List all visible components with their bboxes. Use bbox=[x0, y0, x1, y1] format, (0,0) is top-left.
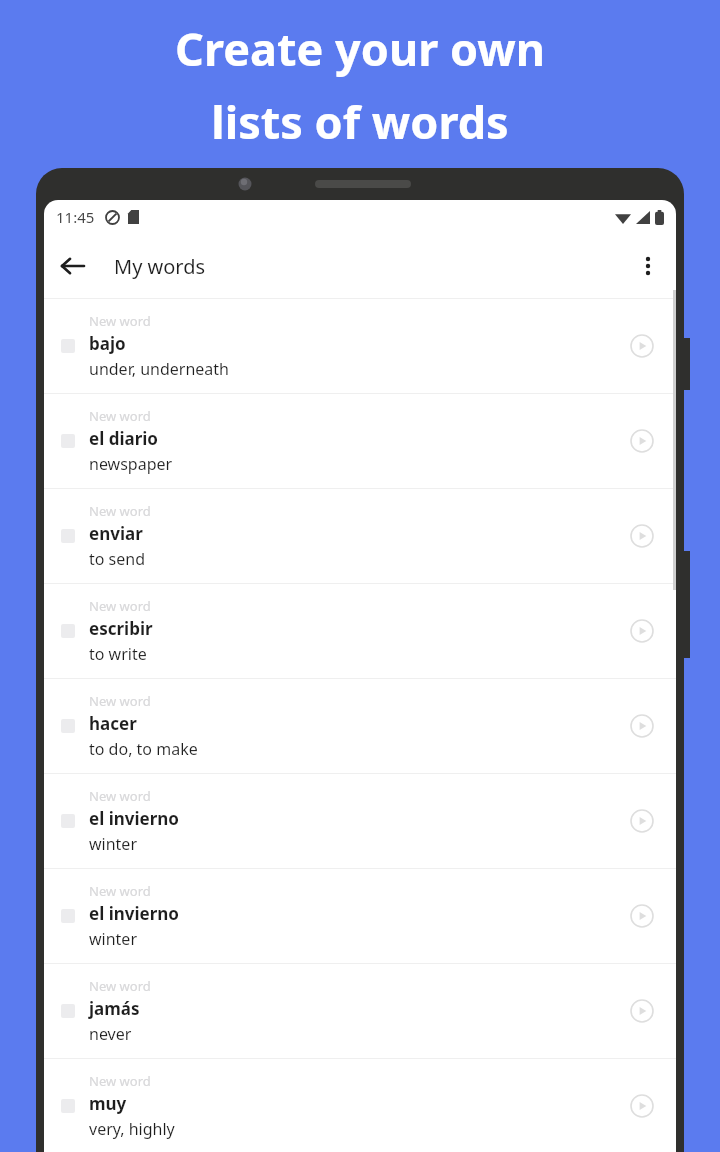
staticText: jamás bbox=[89, 997, 140, 1020]
staticText: under, underneath bbox=[89, 358, 229, 380]
button[interactable]: New word bbox=[44, 584, 676, 679]
button[interactable]: New word bbox=[44, 964, 676, 1059]
staticText: Create your own bbox=[175, 18, 545, 79]
staticText: bajo bbox=[89, 332, 126, 355]
staticText: to write bbox=[89, 643, 147, 665]
staticText: New word bbox=[89, 407, 151, 425]
button[interactable]: Play pronunciation bbox=[622, 516, 662, 556]
staticText: muy bbox=[89, 1092, 127, 1115]
staticText: el diario bbox=[89, 427, 158, 450]
staticText: lists of words bbox=[211, 91, 509, 152]
button[interactable]: Play pronunciation bbox=[622, 326, 662, 366]
staticText: el invierno bbox=[89, 902, 179, 925]
staticText: never bbox=[89, 1023, 132, 1045]
staticText: New word bbox=[89, 977, 151, 995]
button[interactable]: Play pronunciation bbox=[622, 896, 662, 936]
staticText: winter bbox=[89, 833, 138, 855]
button[interactable]: Play pronunciation bbox=[622, 991, 662, 1031]
staticText: New word bbox=[89, 692, 151, 710]
button[interactable]: New word bbox=[44, 394, 676, 489]
staticText: My words bbox=[114, 253, 206, 280]
staticText: New word bbox=[89, 882, 151, 900]
staticText: to send bbox=[89, 548, 146, 570]
button[interactable]: Play pronunciation bbox=[622, 706, 662, 746]
staticText: New word bbox=[89, 787, 151, 805]
button[interactable]: New word bbox=[44, 299, 676, 394]
staticText: newspaper bbox=[89, 453, 173, 475]
button[interactable]: Play pronunciation bbox=[622, 801, 662, 841]
staticText: enviar bbox=[89, 522, 143, 545]
staticText: New word bbox=[89, 1072, 151, 1090]
button[interactable]: New word bbox=[44, 1059, 676, 1152]
staticText: escribir bbox=[89, 617, 153, 640]
button[interactable]: New word bbox=[44, 679, 676, 774]
staticText: New word bbox=[89, 312, 151, 330]
button[interactable]: More options bbox=[620, 238, 676, 294]
staticText: New word bbox=[89, 597, 151, 615]
staticText: 11:45 bbox=[56, 207, 95, 227]
button[interactable]: New word bbox=[44, 489, 676, 584]
staticText: New word bbox=[89, 502, 151, 520]
button[interactable]: Back bbox=[44, 238, 100, 294]
staticText: el invierno bbox=[89, 807, 179, 830]
button[interactable]: Play pronunciation bbox=[622, 421, 662, 461]
staticText: winter bbox=[89, 928, 138, 950]
button[interactable]: New word bbox=[44, 869, 676, 964]
staticText: hacer bbox=[89, 712, 137, 735]
button[interactable]: Play pronunciation bbox=[622, 1086, 662, 1126]
staticText: to do, to make bbox=[89, 738, 198, 760]
staticText: very, highly bbox=[89, 1118, 175, 1140]
button[interactable]: New word bbox=[44, 774, 676, 869]
button[interactable]: Play pronunciation bbox=[622, 611, 662, 651]
